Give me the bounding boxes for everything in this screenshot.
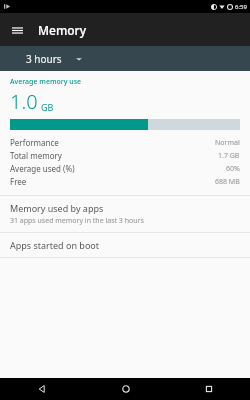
- button[interactable]: Home: [84, 378, 167, 400]
- staticText: 1.7 GB: [218, 151, 240, 161]
- button[interactable]: Performance: [0, 136, 250, 149]
- staticText: Memory: [38, 22, 87, 38]
- staticText: Total memory: [10, 150, 62, 161]
- staticText: GB: [41, 101, 54, 113]
- button[interactable]: Apps started on boot: [0, 233, 250, 257]
- button[interactable]: Recent apps: [167, 378, 250, 400]
- button[interactable]: Average used (%): [0, 162, 250, 175]
- staticText: Average used (%): [10, 163, 75, 174]
- staticText: Normal: [215, 138, 240, 148]
- staticText: 31 apps used memory in the last 3 hours: [10, 216, 144, 226]
- staticText: Performance: [10, 137, 59, 148]
- button[interactable]: Back: [0, 378, 84, 400]
- staticText: 6:59: [235, 3, 247, 11]
- staticText: 3 hours: [26, 52, 62, 66]
- staticText: 688 MB: [215, 177, 240, 187]
- staticText: Free: [10, 176, 27, 187]
- staticText: 60%: [226, 164, 240, 174]
- staticText: Memory used by apps: [10, 202, 104, 214]
- staticText: Apps started on boot: [10, 239, 100, 251]
- button[interactable]: Total memory: [0, 149, 250, 162]
- button[interactable]: Open navigation drawer: [5, 18, 29, 42]
- button[interactable]: Memory used by apps: [0, 196, 250, 232]
- staticText: 1.0: [10, 88, 38, 115]
- button[interactable]: Free: [0, 175, 250, 188]
- staticText: Average memory use: [10, 77, 82, 87]
- button[interactable]: 3 hours: [22, 49, 86, 69]
